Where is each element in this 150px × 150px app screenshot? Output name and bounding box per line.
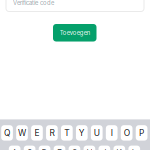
button[interactable]: W: [16, 125, 28, 141]
staticText: R: [49, 128, 54, 138]
button[interactable]: J: [98, 146, 110, 150]
staticText: I: [111, 128, 113, 138]
button[interactable]: E: [31, 125, 43, 141]
button[interactable]: G: [69, 146, 80, 150]
staticText: Toevoegen: [60, 29, 90, 36]
button[interactable]: D: [39, 146, 50, 150]
button[interactable]: P: [136, 125, 147, 141]
staticText: P: [139, 128, 144, 138]
button[interactable]: H: [83, 146, 95, 150]
staticText: K: [116, 148, 122, 150]
staticText: Y: [79, 128, 85, 138]
staticText: D: [42, 148, 48, 150]
staticText: J: [102, 148, 107, 150]
button[interactable]: F: [54, 146, 65, 150]
staticText: Q: [4, 128, 10, 138]
staticText: W: [18, 128, 26, 138]
staticText: G: [71, 148, 77, 150]
staticText: U: [94, 128, 100, 138]
staticText: O: [124, 128, 130, 138]
staticText: T: [64, 128, 69, 138]
button[interactable]: R: [46, 125, 58, 141]
staticText: A: [12, 148, 18, 150]
button[interactable]: U: [91, 125, 103, 141]
button[interactable]: A: [9, 146, 20, 150]
staticText: Verificatie code: [13, 0, 54, 6]
staticText: H: [86, 148, 92, 150]
button[interactable]: O: [121, 125, 132, 141]
staticText: E: [34, 128, 39, 138]
button[interactable]: I: [106, 125, 118, 141]
button[interactable]: S: [24, 146, 35, 150]
button[interactable]: Y: [76, 125, 88, 141]
staticText: L: [132, 148, 137, 150]
button[interactable]: Toevoegen: [53, 24, 96, 41]
button[interactable]: L: [128, 146, 140, 150]
staticText: S: [27, 148, 32, 150]
button[interactable]: K: [113, 146, 125, 150]
staticText: F: [57, 148, 62, 150]
button[interactable]: Q: [1, 125, 13, 141]
button[interactable]: T: [61, 125, 73, 141]
